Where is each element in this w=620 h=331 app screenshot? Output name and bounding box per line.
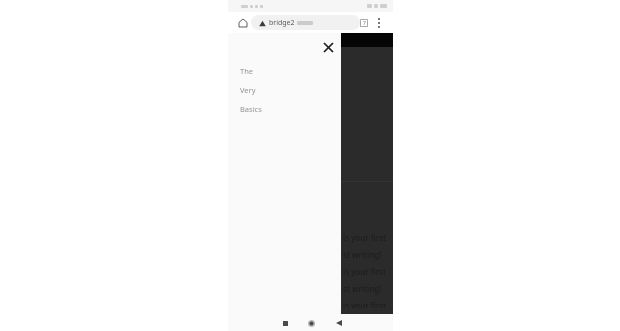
button[interactable]: Home	[236, 16, 250, 30]
staticText: bridge2	[269, 18, 295, 28]
button[interactable]: The	[228, 61, 341, 80]
staticText: st writing!	[343, 249, 382, 260]
button[interactable]: Very	[228, 80, 341, 99]
staticText: Very	[240, 85, 256, 95]
button[interactable]: More options	[371, 15, 386, 30]
staticText: Basics	[240, 104, 262, 114]
staticText: is your first	[343, 266, 387, 277]
button[interactable]: Back	[331, 315, 347, 331]
staticText: The	[240, 66, 254, 76]
button[interactable]: Close menu	[319, 38, 337, 56]
button[interactable]: Recent apps	[277, 315, 293, 331]
staticText: is your first	[343, 300, 387, 308]
staticText: is your first	[343, 232, 387, 243]
staticText: 7	[363, 20, 366, 27]
button[interactable]: Tab switcher	[356, 15, 371, 30]
button[interactable]: Basics	[228, 99, 341, 118]
button[interactable]: Home	[303, 315, 319, 331]
button[interactable]: bridge2	[251, 15, 360, 30]
staticText: st writing!	[343, 283, 382, 294]
